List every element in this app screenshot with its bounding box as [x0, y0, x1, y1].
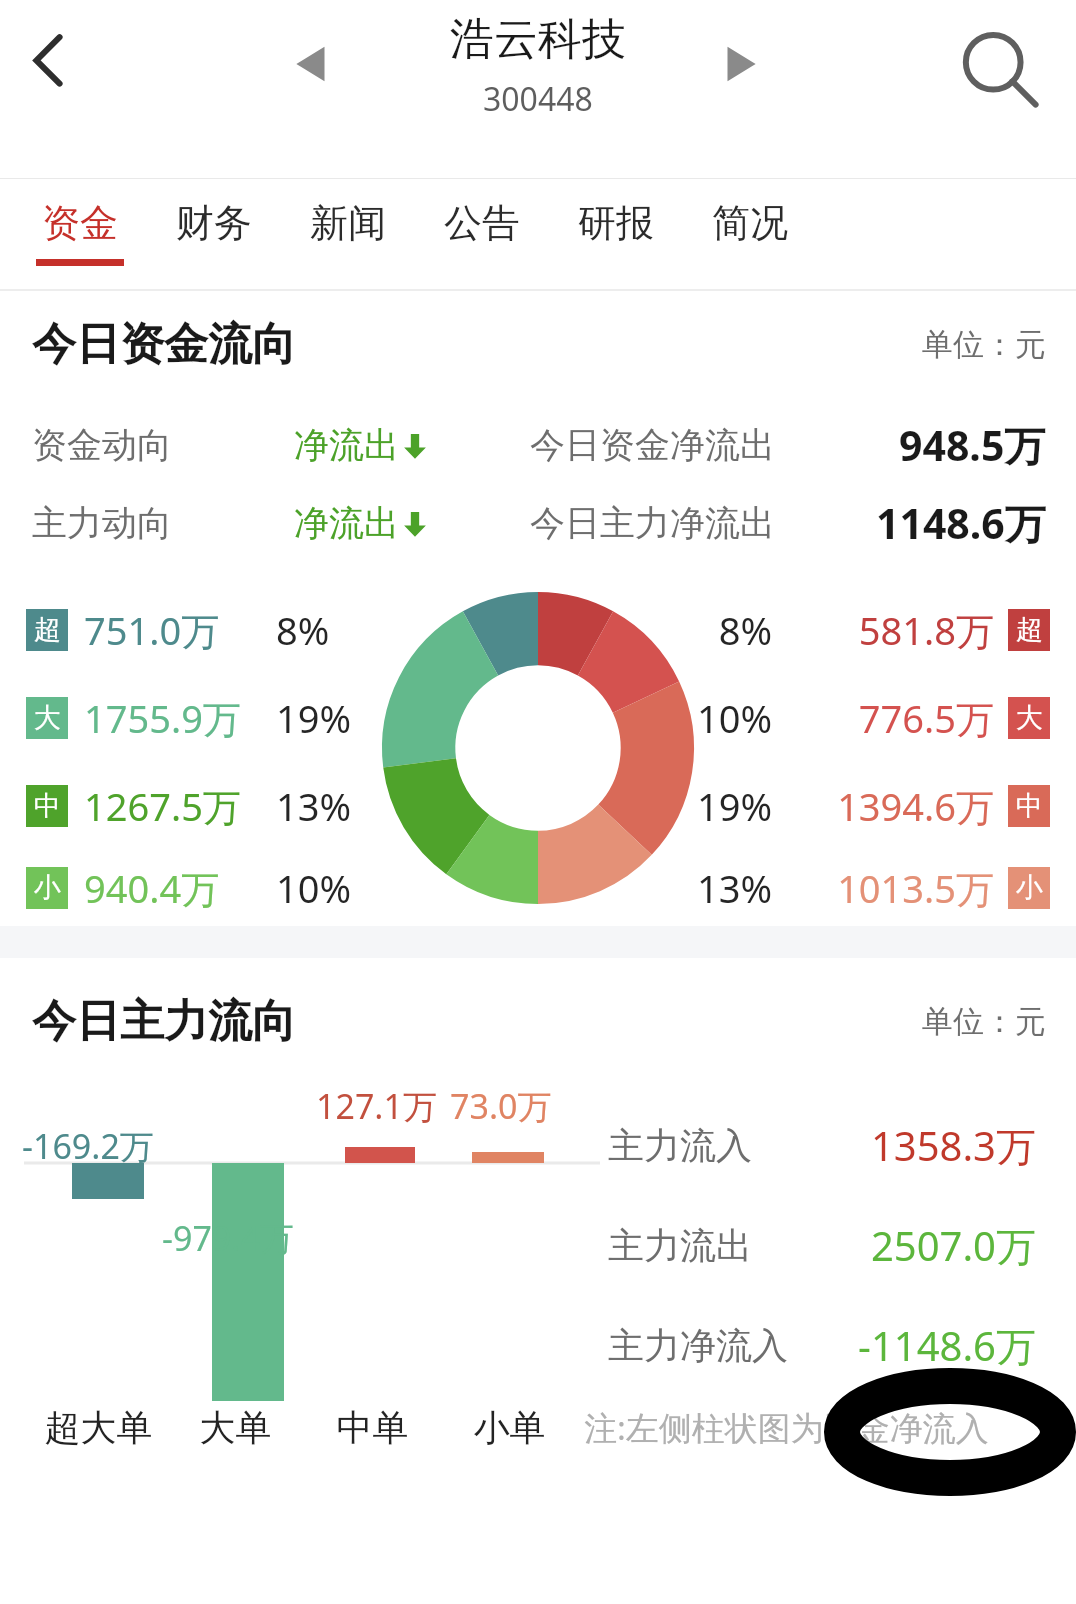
staticText: -169.2万: [22, 1123, 154, 1169]
staticText: 73.0万: [450, 1083, 552, 1129]
staticText: 浩云科技: [450, 12, 626, 67]
button[interactable]: 超: [26, 586, 330, 674]
staticText: 776.5万: [798, 692, 994, 744]
staticText: 13%: [672, 862, 772, 914]
staticText: 581.8万: [798, 604, 994, 656]
staticText: 研报: [578, 199, 654, 247]
staticText: 今日主力净流出: [530, 501, 775, 545]
staticText: 注:左侧柱状图为资金净流入: [584, 1405, 989, 1450]
button[interactable]: Next stock: [714, 38, 766, 90]
staticText: 简况: [712, 199, 788, 247]
staticText: 今日主力流向: [32, 994, 296, 1049]
button[interactable]: 研报: [564, 179, 668, 266]
staticText: 1358.3万: [830, 1118, 1036, 1173]
staticText: 948.5万: [899, 417, 1046, 473]
staticText: 主力净流入: [608, 1323, 830, 1368]
staticText: 大: [34, 701, 61, 735]
button[interactable]: 资金: [28, 179, 132, 266]
staticText: 1267.5万: [84, 780, 276, 832]
staticText: 公告: [444, 199, 520, 247]
staticText: 小单: [441, 1405, 578, 1450]
staticText: 1013.5万: [798, 862, 994, 914]
staticText: 主力流出: [608, 1223, 830, 1268]
staticText: 中: [1016, 789, 1043, 823]
staticText: 主力动向: [32, 501, 294, 545]
button[interactable]: 中: [26, 762, 352, 850]
button[interactable]: 主力流入: [608, 1095, 1036, 1195]
button[interactable]: 公告: [430, 179, 534, 266]
button[interactable]: Previous stock: [286, 38, 338, 90]
staticText: -979.4万: [162, 1215, 294, 1261]
staticText: 1394.6万: [798, 780, 994, 832]
button[interactable]: 小: [26, 850, 352, 926]
staticText: 超大单: [30, 1405, 167, 1450]
button[interactable]: 8%: [672, 586, 1050, 674]
staticText: 19%: [672, 780, 772, 832]
staticText: 300448: [483, 77, 593, 121]
staticText: 大单: [167, 1405, 304, 1450]
staticText: 净流出: [294, 501, 399, 545]
staticText: 10%: [276, 862, 352, 914]
staticText: 940.4万: [84, 862, 276, 914]
button[interactable]: Search: [950, 20, 1046, 116]
button[interactable]: 大: [26, 674, 352, 762]
staticText: 大: [1016, 701, 1043, 735]
staticText: 中单: [304, 1405, 441, 1450]
button[interactable]: 财务: [162, 179, 266, 266]
staticText: 新闻: [310, 199, 386, 247]
staticText: 单位：元: [922, 325, 1046, 364]
button[interactable]: 13%: [672, 850, 1050, 926]
staticText: 今日资金净流出: [530, 423, 775, 467]
button[interactable]: 19%: [672, 762, 1050, 850]
button[interactable]: Back: [10, 18, 90, 98]
staticText: 单位：元: [922, 1002, 1046, 1041]
staticText: 主力流入: [608, 1123, 830, 1168]
staticText: 13%: [276, 780, 352, 832]
button[interactable]: 新闻: [296, 179, 400, 266]
staticText: 超: [34, 613, 61, 647]
staticText: 127.1万: [316, 1083, 437, 1129]
button[interactable]: 10%: [672, 674, 1050, 762]
button[interactable]: 主力流出: [608, 1195, 1036, 1295]
staticText: 2507.0万: [830, 1218, 1036, 1273]
staticText: 10%: [672, 692, 772, 744]
staticText: 资金动向: [32, 423, 294, 467]
button[interactable]: 主力净流入: [608, 1295, 1036, 1395]
staticText: 1148.6万: [876, 495, 1046, 551]
button[interactable]: 主力动向: [32, 484, 1046, 562]
staticText: 8%: [276, 604, 330, 656]
staticText: 751.0万: [84, 604, 276, 656]
staticText: 1755.9万: [84, 692, 276, 744]
staticText: 财务: [176, 199, 252, 247]
staticText: 8%: [672, 604, 772, 656]
staticText: 资金: [42, 199, 118, 247]
staticText: 中: [34, 789, 61, 823]
button[interactable]: 资金动向: [32, 406, 1046, 484]
staticText: 净流出: [294, 423, 399, 467]
button[interactable]: 简况: [698, 179, 802, 266]
staticText: 今日资金流向: [32, 317, 296, 372]
staticText: 小: [34, 871, 61, 905]
staticText: 小: [1016, 871, 1043, 905]
staticText: 19%: [276, 692, 352, 744]
staticText: -1148.6万: [830, 1318, 1036, 1373]
staticText: 超: [1016, 613, 1043, 647]
